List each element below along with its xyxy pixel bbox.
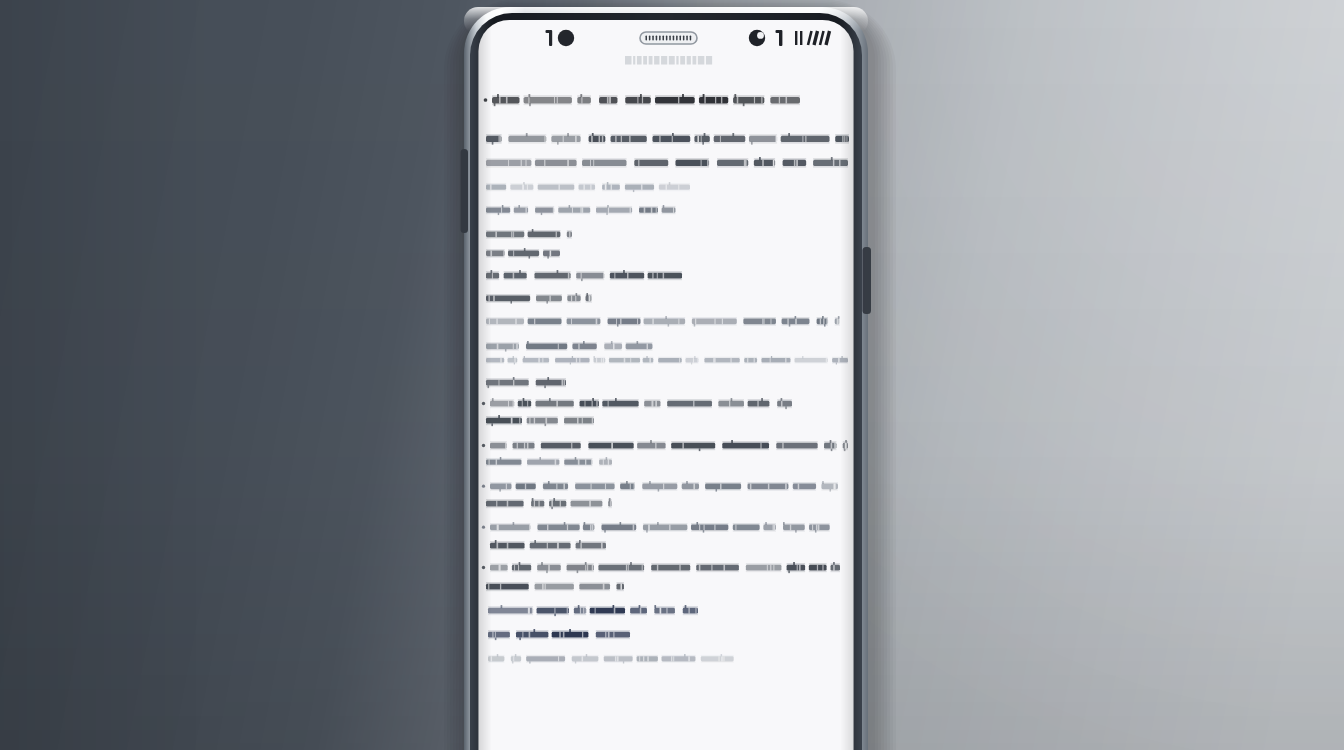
button[interactable]: Phone displaying a document page [0,0,1344,750]
